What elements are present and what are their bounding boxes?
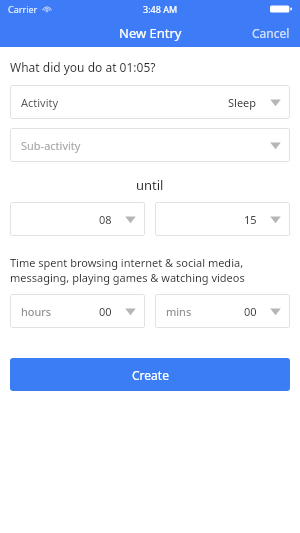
staticText: 00 — [99, 304, 112, 319]
staticText: Sub-activity — [21, 138, 81, 153]
staticText: 3:48 AM — [143, 3, 178, 15]
button[interactable]: Create — [10, 358, 290, 391]
button[interactable]: Cancel — [242, 21, 300, 45]
staticText: 08 — [99, 212, 112, 227]
staticText: 00 — [244, 304, 257, 319]
staticText: 15 — [244, 212, 257, 227]
staticText: Sleep — [228, 95, 257, 110]
staticText: Carrier — [8, 3, 38, 15]
button[interactable]: Hours spent selector — [10, 294, 145, 328]
staticText: New Entry — [119, 24, 182, 42]
staticText: Cancel — [252, 25, 290, 41]
staticText: Activity — [21, 95, 59, 110]
button[interactable]: Minutes spent selector — [155, 294, 290, 328]
staticText: Create — [132, 367, 169, 383]
button[interactable]: Minute selector — [155, 202, 290, 236]
staticText: until — [136, 176, 164, 194]
staticText: What did you do at 01:05? — [10, 59, 156, 75]
staticText: hours — [21, 304, 52, 319]
button[interactable]: Sub-activity selector — [10, 128, 290, 162]
button[interactable]: Activity selector — [10, 85, 290, 119]
staticText: mins — [166, 304, 192, 319]
staticText: Time spent browsing internet & social me… — [10, 255, 290, 285]
button[interactable]: Hour selector — [10, 202, 145, 236]
